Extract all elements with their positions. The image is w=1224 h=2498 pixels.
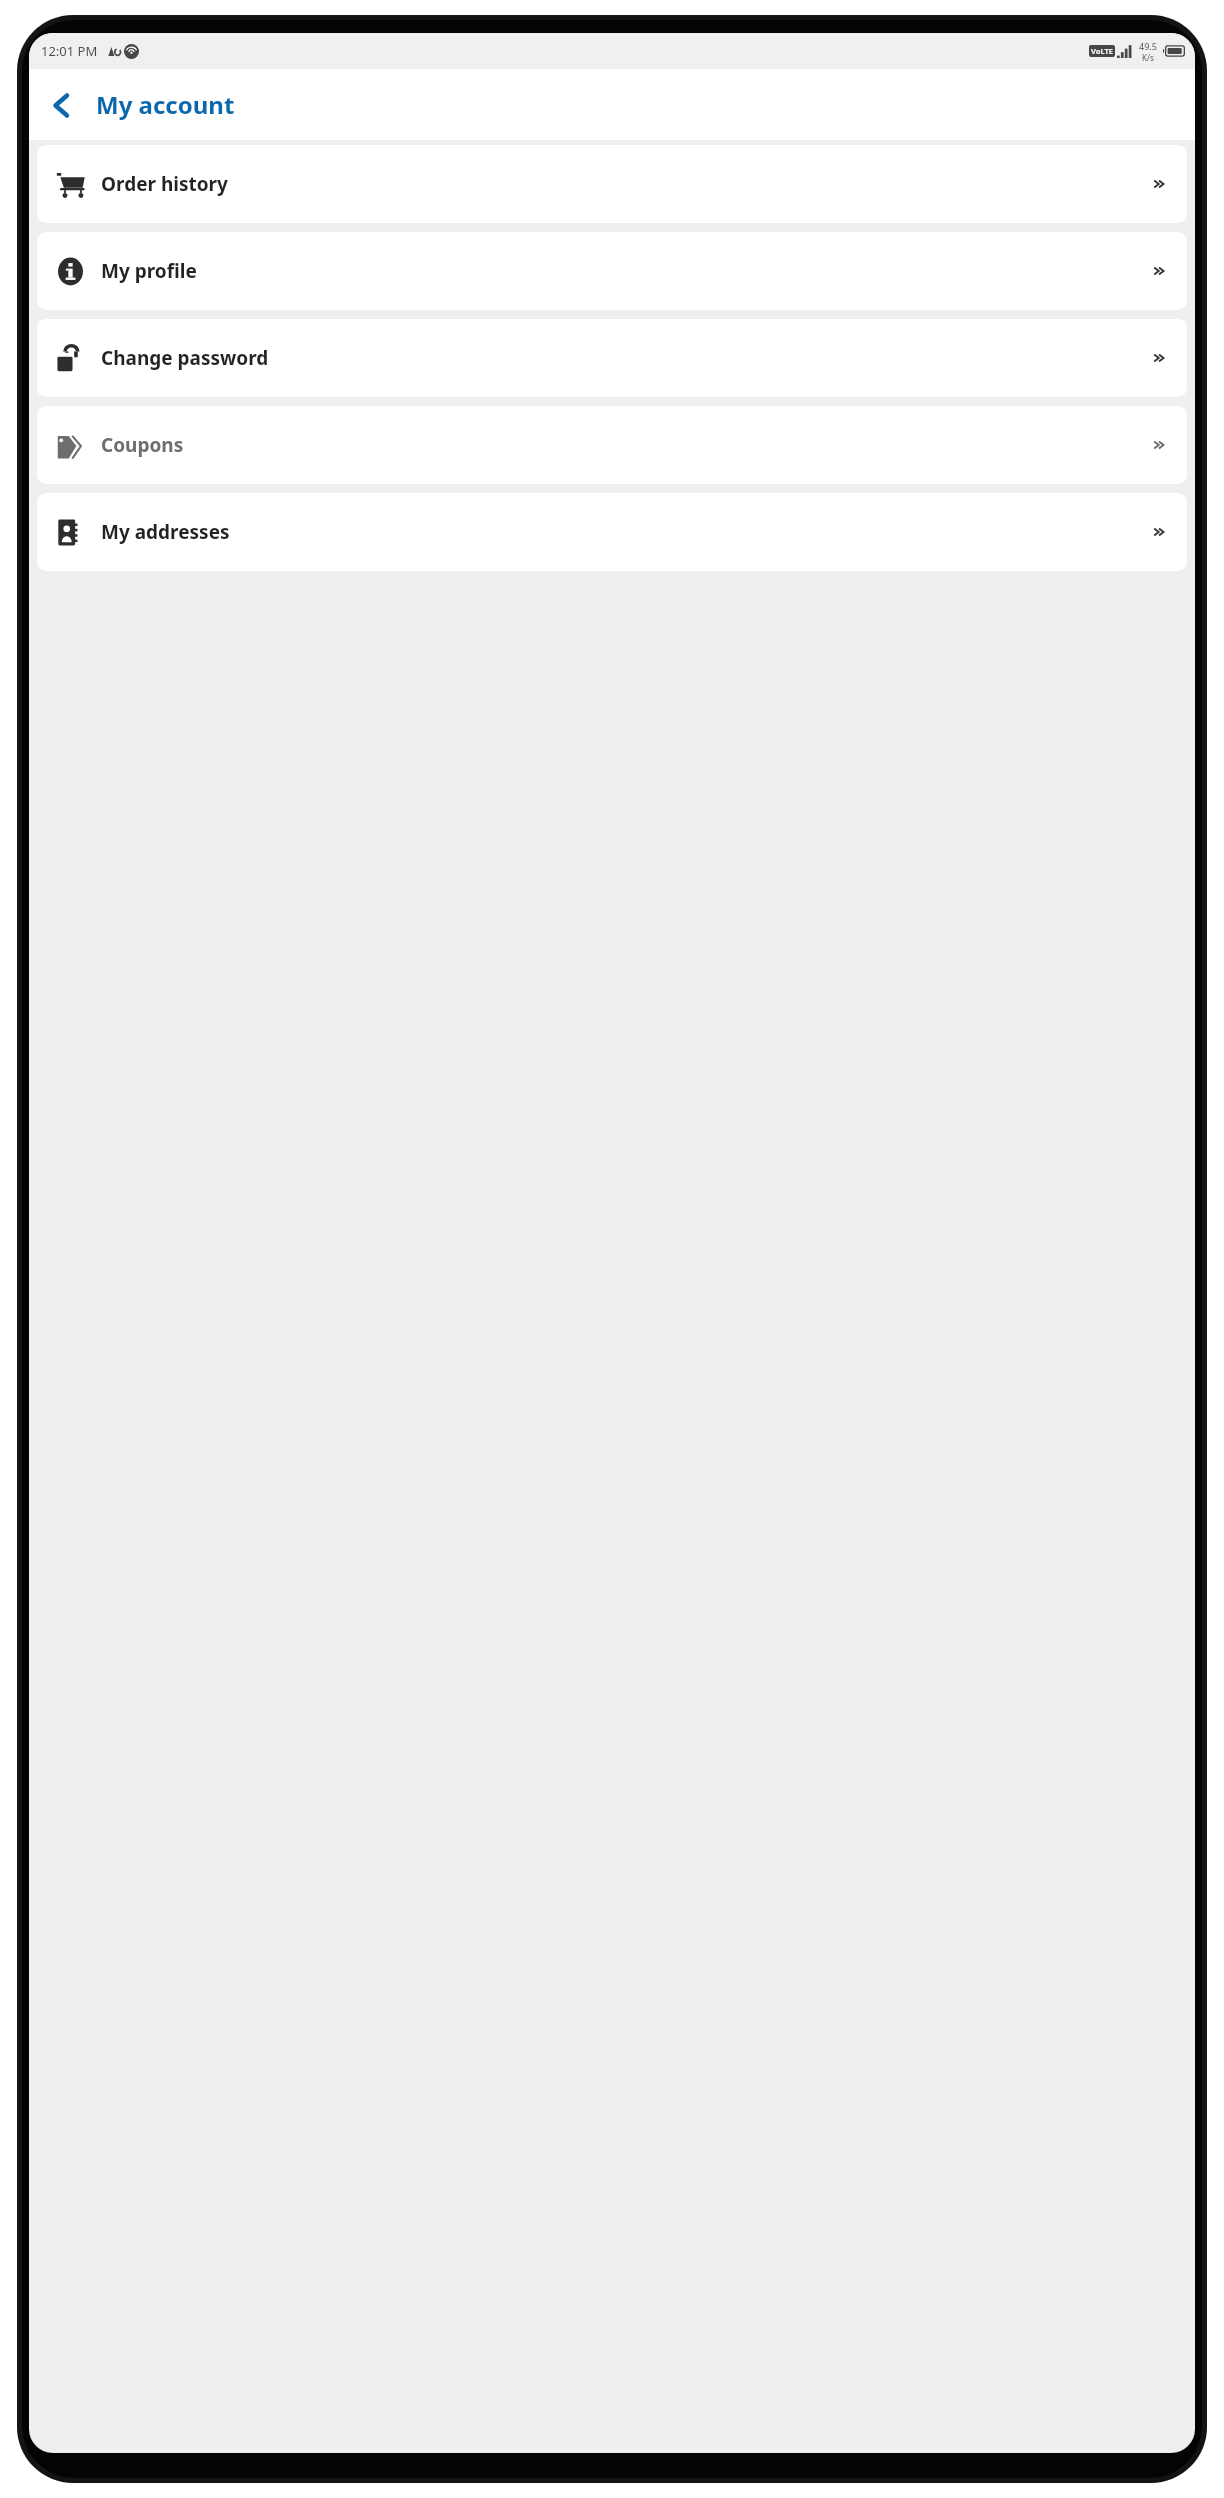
staticText: VoLTE xyxy=(1091,46,1113,56)
staticText: My addresses xyxy=(101,519,230,545)
staticText: Order history xyxy=(101,171,228,197)
button[interactable]: Coupons xyxy=(37,406,1187,484)
staticText: 49.5 xyxy=(1139,40,1157,52)
staticText: Coupons xyxy=(101,432,184,458)
button[interactable]: My addresses xyxy=(37,493,1187,571)
staticText: My account xyxy=(96,88,235,121)
staticText: 12:01 PM xyxy=(41,42,98,60)
button[interactable]: Change password xyxy=(37,319,1187,397)
button[interactable]: Back xyxy=(34,78,88,132)
button[interactable]: My profile xyxy=(37,232,1187,310)
staticText: K/s xyxy=(1142,52,1154,63)
button[interactable]: Order history xyxy=(37,145,1187,223)
staticText: My profile xyxy=(101,258,197,284)
staticText: Change password xyxy=(101,345,269,371)
